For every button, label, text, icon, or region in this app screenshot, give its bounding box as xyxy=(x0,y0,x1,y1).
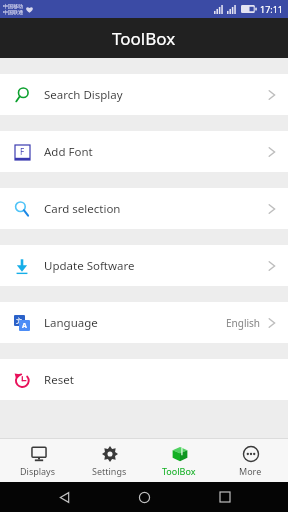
staticText: F xyxy=(20,146,25,157)
staticText: Settings xyxy=(92,465,127,477)
button[interactable]: 文 xyxy=(0,302,288,343)
button[interactable]: Search Display xyxy=(0,74,288,115)
staticText: Update Software xyxy=(44,258,135,274)
button[interactable]: Reset xyxy=(0,359,288,400)
staticText: 中国联通 xyxy=(3,9,23,15)
staticText: Language xyxy=(44,315,98,331)
button[interactable]: Home xyxy=(127,482,161,512)
button[interactable]: Displays xyxy=(5,442,71,480)
staticText: Search Display xyxy=(44,87,123,103)
staticText: A xyxy=(22,321,27,331)
button[interactable]: F xyxy=(0,131,288,172)
staticText: More xyxy=(239,465,262,477)
button[interactable]: More xyxy=(217,442,283,480)
staticText: Card selection xyxy=(44,201,121,217)
staticText: 文 xyxy=(16,317,23,325)
staticText: Reset xyxy=(44,372,74,388)
button[interactable]: Update Software xyxy=(0,245,288,286)
button[interactable]: Card selection xyxy=(0,188,288,229)
button[interactable]: Back xyxy=(47,482,81,512)
staticText: ToolBox xyxy=(162,465,196,477)
staticText: 17:11 xyxy=(260,3,284,15)
staticText: English xyxy=(226,316,261,330)
staticText: Add Font xyxy=(44,144,93,160)
staticText: ToolBox xyxy=(112,27,176,50)
button[interactable]: Settings xyxy=(76,442,142,480)
staticText: Displays xyxy=(20,465,56,477)
button[interactable]: ToolBox xyxy=(146,442,212,480)
button[interactable]: Recents xyxy=(208,482,242,512)
staticText: 中国移动 xyxy=(3,3,23,9)
